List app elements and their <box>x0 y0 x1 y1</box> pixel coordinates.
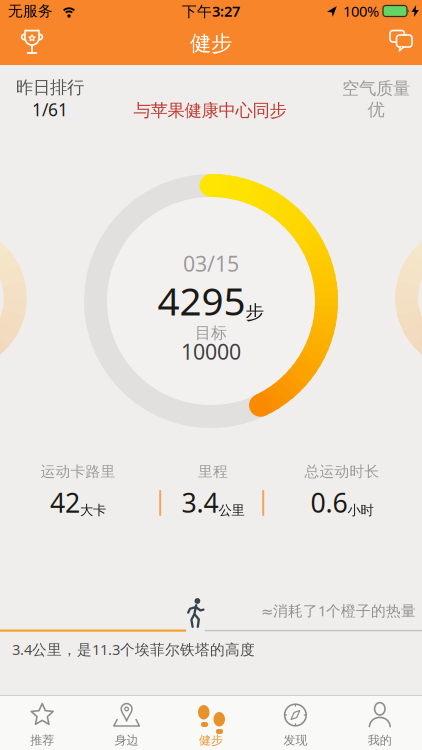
staticText: 发现 <box>283 733 307 748</box>
staticText: 3.4公里，是11.3个埃菲尔铁塔的高度 <box>12 640 255 659</box>
staticText: 10000 <box>181 337 241 366</box>
button[interactable]: 我的 <box>338 695 422 750</box>
staticText: 优 <box>367 99 384 120</box>
button[interactable]: Leaderboard <box>20 30 44 54</box>
staticText: 身边 <box>115 733 139 748</box>
staticText: 0.6小时 <box>310 485 373 520</box>
staticText: 总运动时长 <box>304 462 379 480</box>
staticText: 03/15 <box>183 249 239 278</box>
staticText: 100% <box>343 1 379 21</box>
staticText: 3.4公里 <box>181 485 244 520</box>
staticText: ≈消耗了1个橙子的热量 <box>261 601 416 620</box>
staticText: 健步 <box>190 30 232 57</box>
button[interactable]: 发现 <box>253 695 338 750</box>
button[interactable]: 与苹果健康中心同步 <box>133 100 286 121</box>
button[interactable]: 空气质量 <box>342 78 410 120</box>
staticText: 42大卡 <box>50 485 106 520</box>
button[interactable]: 推荐 <box>0 695 84 750</box>
staticText: 与苹果健康中心同步 <box>133 100 286 121</box>
staticText: 我的 <box>368 733 392 748</box>
staticText: 无服务 <box>8 2 53 20</box>
staticText: 健步 <box>199 733 223 748</box>
button[interactable]: 身边 <box>84 695 169 750</box>
button[interactable]: 昨日排行 <box>16 77 84 121</box>
staticText: 目标 <box>195 323 227 343</box>
staticText: 1/61 <box>32 98 68 121</box>
button[interactable]: Messages <box>390 30 413 53</box>
button[interactable]: 健步 <box>169 695 253 750</box>
staticText: 昨日排行 <box>16 77 84 98</box>
staticText: 空气质量 <box>342 78 410 99</box>
staticText: 里程 <box>198 462 228 480</box>
staticText: 推荐 <box>30 733 54 748</box>
staticText: 4295步 <box>157 275 264 326</box>
staticText: 运动卡路里 <box>40 462 115 480</box>
staticText: 下午3:27 <box>182 1 240 21</box>
